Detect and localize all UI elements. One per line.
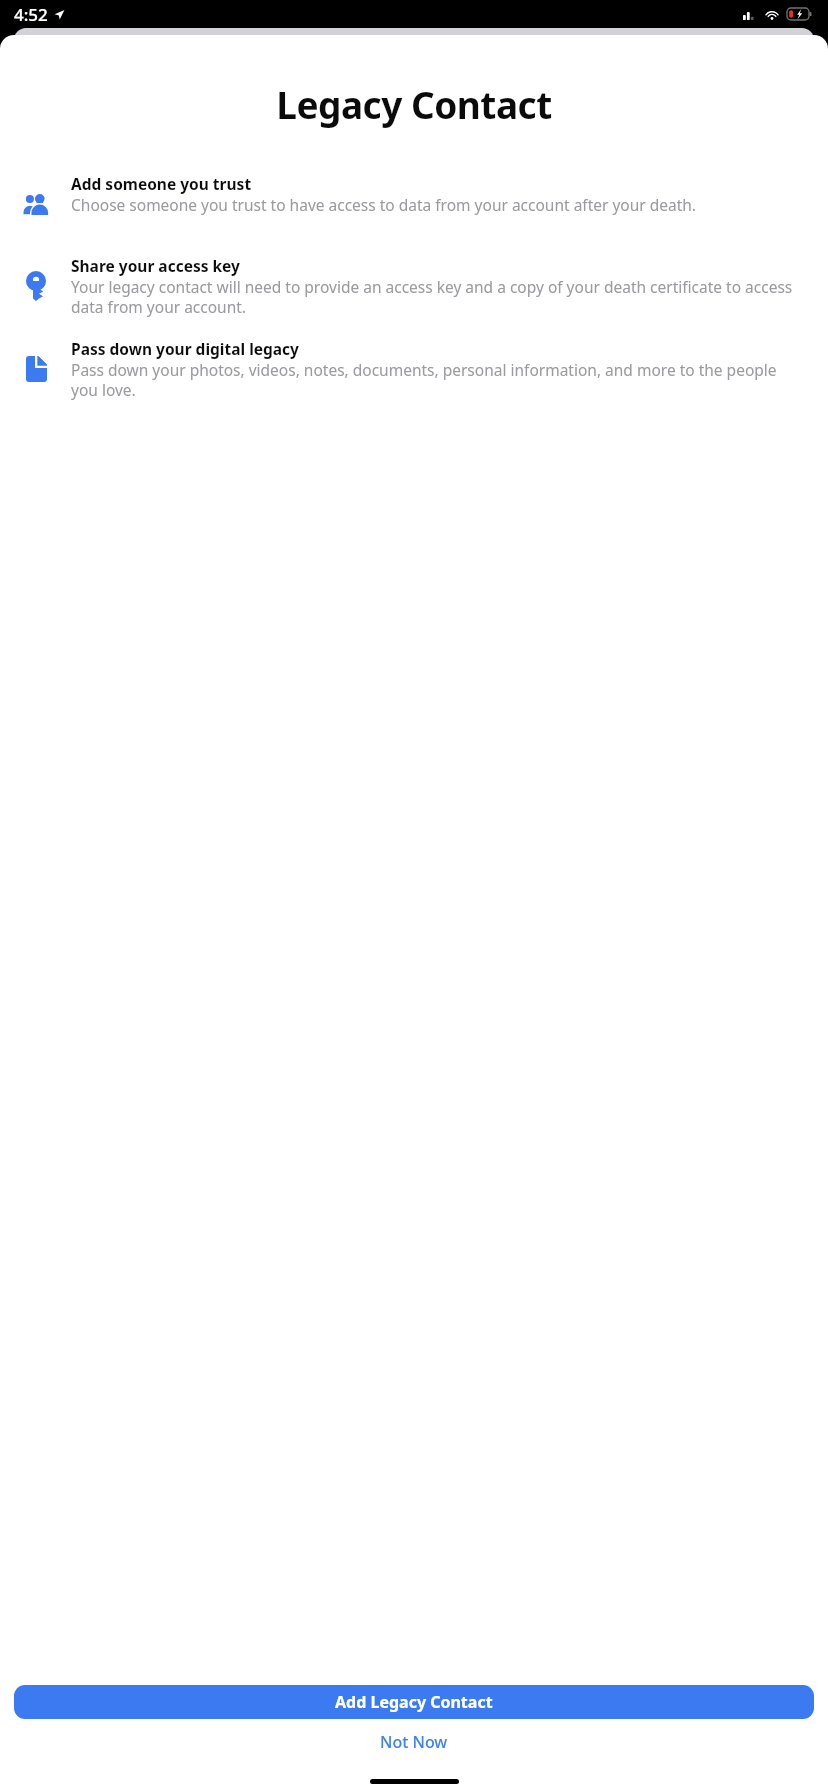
staticText: Share your access key [71,255,240,276]
staticText: 4:52 [14,3,48,26]
staticText: Not Now [380,1731,448,1753]
staticText: Pass down your digital legacy [71,338,299,359]
staticText: Your legacy contact will need to provide… [71,276,804,318]
button[interactable]: Add Legacy Contact [14,1685,814,1719]
staticText: Add Legacy Contact [335,1691,493,1713]
staticText: Pass down your photos, videos, notes, do… [71,359,804,401]
staticText: Choose someone you trust to have access … [71,194,697,215]
button[interactable]: Not Now [0,1727,828,1757]
staticText: Legacy Contact [0,79,828,129]
staticText: Add someone you trust [71,173,252,194]
